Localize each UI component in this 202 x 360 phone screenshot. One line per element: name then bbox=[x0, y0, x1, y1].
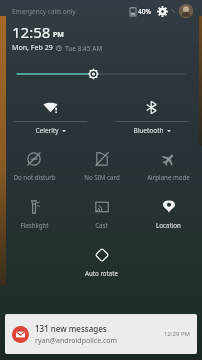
staticText: Mon, Feb 29 bbox=[12, 43, 53, 53]
button[interactable]: Cast bbox=[68, 191, 135, 239]
staticText: Location bbox=[156, 221, 181, 229]
staticText: 12:58 bbox=[12, 22, 51, 42]
button[interactable]: Brightness bbox=[0, 59, 202, 89]
button[interactable]: Bluetooth bbox=[101, 93, 202, 143]
staticText: ryan@androidpolice.com bbox=[35, 336, 118, 346]
staticText: 131 new messages bbox=[35, 323, 107, 334]
button[interactable]: Settings bbox=[156, 5, 169, 18]
staticText: Cast bbox=[95, 221, 108, 229]
button[interactable]: Location bbox=[135, 191, 202, 239]
button[interactable]: Auto rotate bbox=[68, 239, 135, 287]
staticText: 12:29 PM bbox=[164, 330, 190, 338]
staticText: Celerity bbox=[35, 126, 59, 135]
staticText: No SIM card bbox=[84, 173, 120, 181]
staticText: Emergency calls only bbox=[12, 7, 76, 16]
button[interactable]: Flashlight bbox=[0, 191, 68, 239]
button[interactable]: Do not disturb bbox=[0, 143, 68, 191]
staticText: Flashlight bbox=[20, 221, 49, 229]
staticText: Auto rotate bbox=[85, 269, 118, 277]
staticText: Tue 8:45 AM bbox=[65, 44, 103, 53]
staticText: Bluetooth bbox=[133, 126, 164, 135]
button[interactable]: User profile bbox=[179, 4, 193, 18]
staticText: Airplane mode bbox=[147, 173, 190, 181]
staticText: PM bbox=[53, 30, 64, 40]
staticText: 40% bbox=[138, 7, 151, 16]
button[interactable]: 131 new messages bbox=[5, 314, 197, 354]
button[interactable]: No SIM card bbox=[68, 143, 135, 191]
button[interactable]: Wi-Fi bbox=[0, 93, 101, 143]
button[interactable]: Airplane mode bbox=[135, 143, 202, 191]
staticText: Do not disturb bbox=[13, 173, 56, 181]
